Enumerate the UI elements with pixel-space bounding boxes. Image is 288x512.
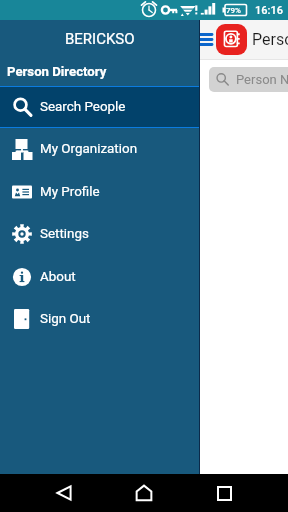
- button[interactable]: App icon: [216, 24, 247, 55]
- staticText: 16:16: [255, 4, 283, 17]
- button[interactable]: My Profile: [0, 171, 199, 213]
- button[interactable]: Search People: [0, 86, 199, 128]
- button[interactable]: Back: [24, 474, 104, 512]
- staticText: Person: [252, 30, 288, 49]
- staticText: 79%: [226, 6, 241, 15]
- staticText: Search People: [40, 99, 126, 115]
- staticText: About: [40, 269, 76, 285]
- button[interactable]: Open navigation drawer: [194, 20, 214, 59]
- staticText: Sign Out: [40, 311, 91, 327]
- staticText: Person Directory: [7, 64, 107, 79]
- staticText: My Profile: [40, 184, 100, 200]
- button[interactable]: Home: [104, 474, 184, 512]
- button[interactable]: About: [0, 256, 199, 298]
- staticText: My Organization: [40, 141, 138, 157]
- staticText: BERICKSO: [65, 30, 135, 48]
- button[interactable]: Sign Out: [0, 298, 199, 340]
- button[interactable]: Person Na: [209, 67, 288, 92]
- staticText: Person Na: [236, 72, 288, 87]
- button[interactable]: Settings: [0, 213, 199, 255]
- staticText: Settings: [40, 226, 89, 242]
- button[interactable]: Recent apps: [184, 474, 264, 512]
- button[interactable]: My Organization: [0, 128, 199, 170]
